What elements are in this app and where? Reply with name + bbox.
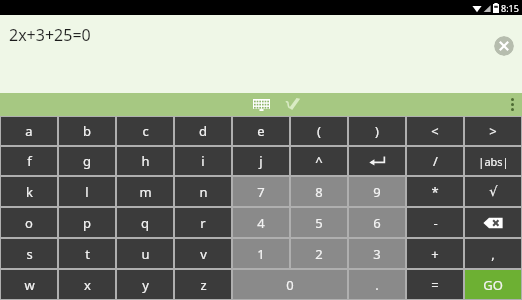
button[interactable]: ): [349, 117, 405, 145]
button[interactable]: <: [407, 117, 463, 145]
button[interactable]: +: [407, 239, 463, 268]
button[interactable]: y: [117, 270, 173, 299]
button[interactable]: i: [175, 147, 231, 175]
button[interactable]: GO: [465, 270, 521, 299]
button[interactable]: o: [1, 208, 57, 237]
staticText: >: [489, 122, 497, 140]
button[interactable]: ,: [465, 239, 521, 268]
staticText: g: [83, 152, 91, 170]
staticText: .: [375, 276, 379, 294]
button[interactable]: g: [59, 147, 115, 175]
button[interactable]: n: [175, 177, 231, 206]
staticText: 2: [315, 245, 323, 263]
button[interactable]: h: [117, 147, 173, 175]
button[interactable]: e: [233, 117, 289, 145]
staticText: n: [199, 183, 208, 201]
staticText: 9: [373, 183, 381, 201]
button[interactable]: 8: [291, 177, 347, 206]
staticText: u: [141, 245, 150, 263]
button[interactable]: /: [407, 147, 463, 175]
button[interactable]: d: [175, 117, 231, 145]
button[interactable]: f: [1, 147, 57, 175]
button[interactable]: c: [117, 117, 173, 145]
staticText: y: [142, 276, 149, 294]
button[interactable]: 7: [233, 177, 289, 206]
button[interactable]: r: [175, 208, 231, 237]
button[interactable]: t: [59, 239, 115, 268]
button[interactable]: 5: [291, 208, 347, 237]
button[interactable]: 1: [233, 239, 289, 268]
staticText: z: [200, 276, 207, 294]
button[interactable]: *: [407, 177, 463, 206]
staticText: √: [489, 184, 498, 199]
staticText: 8:15: [501, 2, 519, 14]
button[interactable]: m: [117, 177, 173, 206]
staticText: f: [27, 152, 32, 170]
staticText: =: [431, 276, 439, 294]
staticText: w: [24, 276, 35, 294]
staticText: h: [141, 152, 150, 170]
staticText: t: [85, 245, 90, 263]
staticText: 3: [373, 245, 381, 263]
button[interactable]: More options: [502, 93, 522, 116]
staticText: i: [201, 152, 205, 170]
button[interactable]: >: [465, 117, 521, 145]
staticText: 8: [315, 183, 323, 201]
button[interactable]: w: [1, 270, 57, 299]
button[interactable]: 3: [349, 239, 405, 268]
button[interactable]: q: [117, 208, 173, 237]
staticText: +: [431, 245, 439, 263]
button[interactable]: =: [407, 270, 463, 299]
button[interactable]: ^: [291, 147, 347, 175]
staticText: r: [200, 214, 206, 232]
button[interactable]: j: [233, 147, 289, 175]
staticText: ,: [491, 245, 495, 263]
button[interactable]: Handwriting input: [282, 93, 304, 116]
staticText: b: [83, 122, 91, 140]
button[interactable]: .: [349, 270, 405, 299]
staticText: 2x+3+25=0: [9, 24, 91, 46]
button[interactable]: l: [59, 177, 115, 206]
staticText: -: [433, 214, 438, 232]
staticText: <: [431, 122, 439, 140]
button[interactable]: v: [175, 239, 231, 268]
button[interactable]: |abs|: [465, 147, 521, 175]
staticText: d: [199, 122, 207, 140]
button[interactable]: x: [59, 270, 115, 299]
staticText: s: [26, 245, 33, 263]
staticText: m: [139, 183, 152, 201]
button[interactable]: s: [1, 239, 57, 268]
button[interactable]: Clear: [494, 36, 514, 56]
button[interactable]: Enter: [349, 147, 405, 175]
staticText: c: [142, 122, 149, 140]
staticText: k: [26, 183, 33, 201]
staticText: l: [85, 183, 89, 201]
staticText: *: [431, 183, 439, 201]
button[interactable]: √: [465, 177, 521, 206]
button[interactable]: z: [175, 270, 231, 299]
button[interactable]: k: [1, 177, 57, 206]
staticText: 6: [373, 214, 381, 232]
staticText: x: [84, 276, 91, 294]
button[interactable]: b: [59, 117, 115, 145]
button[interactable]: -: [407, 208, 463, 237]
button[interactable]: Keyboard input: [250, 93, 272, 116]
button[interactable]: 9: [349, 177, 405, 206]
button[interactable]: (: [291, 117, 347, 145]
staticText: v: [200, 245, 207, 263]
button[interactable]: a: [1, 117, 57, 145]
staticText: /: [433, 152, 438, 170]
staticText: 1: [257, 245, 265, 263]
staticText: e: [257, 122, 265, 140]
button[interactable]: u: [117, 239, 173, 268]
staticText: |abs|: [478, 154, 509, 169]
button[interactable]: 2: [291, 239, 347, 268]
button[interactable]: 6: [349, 208, 405, 237]
staticText: 0: [286, 276, 294, 294]
button[interactable]: 0: [233, 270, 347, 299]
button[interactable]: p: [59, 208, 115, 237]
button[interactable]: 4: [233, 208, 289, 237]
staticText: 4: [257, 214, 265, 232]
button[interactable]: Backspace: [465, 208, 521, 237]
staticText: (: [317, 122, 321, 140]
